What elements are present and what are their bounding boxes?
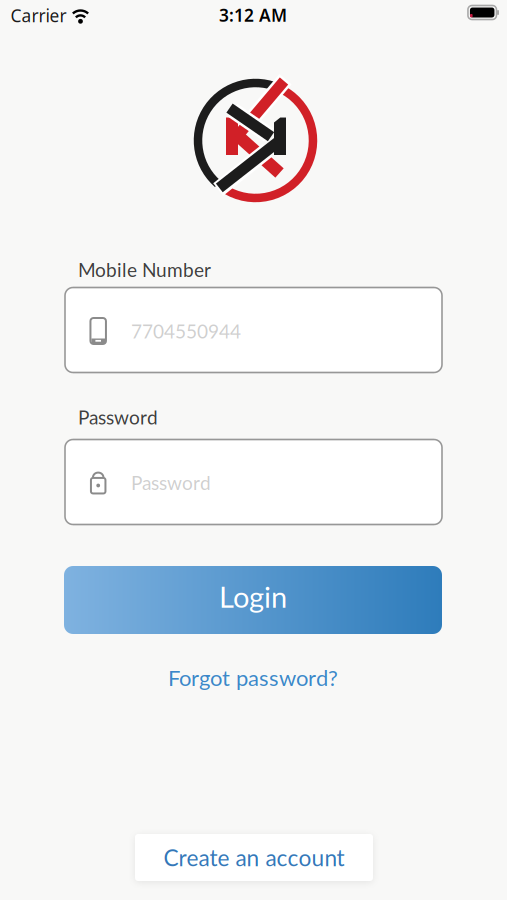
staticText: 7704550944: [131, 320, 241, 342]
staticText: Password: [78, 406, 158, 428]
staticText: Password: [131, 471, 211, 494]
staticText: Create an account: [163, 844, 344, 871]
staticText: 3:12 AM: [219, 3, 287, 26]
staticText: Carrier: [10, 4, 66, 27]
staticText: Forgot password?: [168, 664, 338, 691]
staticText: Login: [219, 579, 287, 614]
staticText: Mobile Number: [78, 258, 211, 281]
